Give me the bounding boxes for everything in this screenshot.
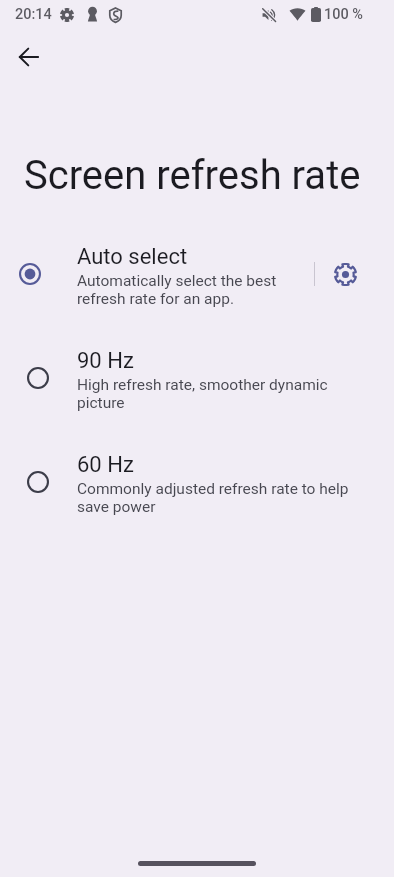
staticText: Screen refresh rate bbox=[24, 152, 361, 199]
staticText: 100 % bbox=[324, 6, 363, 23]
button[interactable]: 90 Hz bbox=[0, 336, 394, 440]
staticText: Automatically select the best refresh ra… bbox=[77, 272, 299, 308]
staticText: 90 Hz bbox=[77, 348, 134, 374]
button[interactable]: Settings bbox=[325, 254, 365, 294]
staticText: 20:14 bbox=[15, 6, 52, 23]
staticText: Commonly adjusted refresh rate to help s… bbox=[77, 480, 352, 516]
staticText: Auto select bbox=[77, 244, 188, 270]
staticText: 60 Hz bbox=[77, 452, 134, 478]
button[interactable]: Auto select bbox=[0, 232, 394, 336]
button[interactable]: Back bbox=[5, 33, 53, 81]
button[interactable]: 60 Hz bbox=[0, 440, 394, 544]
staticText: High refresh rate, smoother dynamic pict… bbox=[77, 376, 352, 412]
